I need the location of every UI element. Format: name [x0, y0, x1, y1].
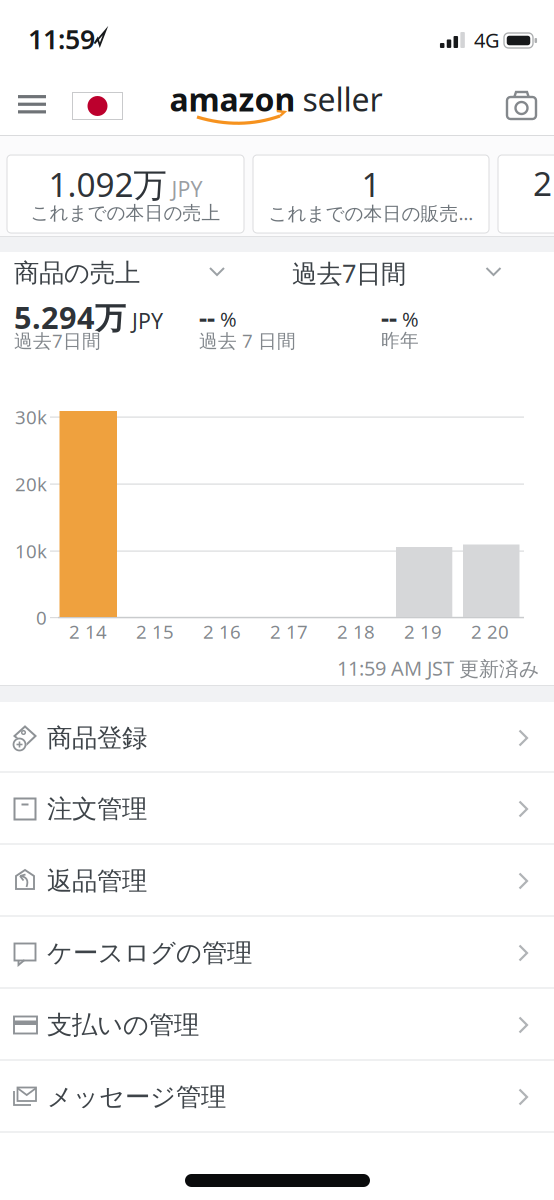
staticText: 1 [361, 162, 380, 206]
staticText: 商品の売上 [14, 257, 140, 288]
staticText: 2 15 [136, 619, 174, 644]
staticText: 10k [15, 539, 47, 563]
button[interactable]: 注文管理 [0, 773, 554, 843]
staticText: これまでの本日の売上 [30, 201, 220, 224]
staticText: 2 17 [270, 619, 308, 644]
staticText: 2 20 [471, 619, 509, 644]
button[interactable]: 返品管理 [0, 845, 554, 915]
staticText: 1.092万 [48, 162, 166, 206]
button[interactable]: ケースログの管理 [0, 917, 554, 987]
staticText: 2 16 [203, 619, 241, 644]
staticText: 過去7日間 [14, 328, 101, 353]
staticText: 11:59 AM JST 更新済み [337, 655, 539, 681]
staticText: 過去 7 日間 [199, 328, 296, 353]
staticText: 2 19 [404, 619, 442, 644]
staticText: 支払いの管理 [47, 1009, 199, 1040]
staticText: 商品登録 [47, 722, 147, 753]
staticText: 返品管理 [47, 865, 147, 896]
staticText: 過去7日間 [292, 256, 406, 290]
staticText: 20k [15, 472, 47, 496]
staticText: 4G [474, 27, 500, 53]
button[interactable]: 過去7日間 [282, 251, 506, 295]
button[interactable]: 商品の売上 [4, 251, 228, 295]
button[interactable] [499, 88, 543, 124]
button[interactable] [10, 87, 54, 121]
staticText: 注文管理 [47, 793, 147, 824]
staticText: % [402, 306, 419, 332]
staticText: これまでの本日の販売… [268, 201, 473, 225]
button[interactable]: 1.092万 [7, 155, 244, 233]
staticText: 2 14 [69, 619, 107, 644]
staticText: ケースログの管理 [47, 937, 252, 968]
staticText: 2 [533, 161, 552, 205]
staticText: -- [199, 300, 215, 334]
button[interactable]: メッセージ管理 [0, 1061, 554, 1131]
staticText: JPY [132, 306, 163, 335]
staticText: amazon [169, 78, 295, 120]
staticText: JPY [171, 174, 202, 203]
staticText: 0 [36, 605, 47, 630]
staticText: 2 18 [337, 619, 375, 644]
staticText: 30k [15, 405, 47, 429]
staticText: seller [302, 78, 382, 120]
staticText: 11:59 [28, 21, 95, 57]
button[interactable]: 2 [498, 155, 554, 233]
staticText: 昨年 [381, 329, 419, 352]
button[interactable]: 支払いの管理 [0, 989, 554, 1059]
staticText: メッセージ管理 [47, 1081, 226, 1112]
button[interactable] [72, 92, 123, 120]
staticText: 5.294万 [14, 297, 126, 337]
staticText: % [220, 306, 237, 332]
button[interactable]: 商品登録 [0, 702, 554, 772]
button[interactable]: 1 [253, 155, 489, 233]
staticText: -- [381, 300, 397, 334]
